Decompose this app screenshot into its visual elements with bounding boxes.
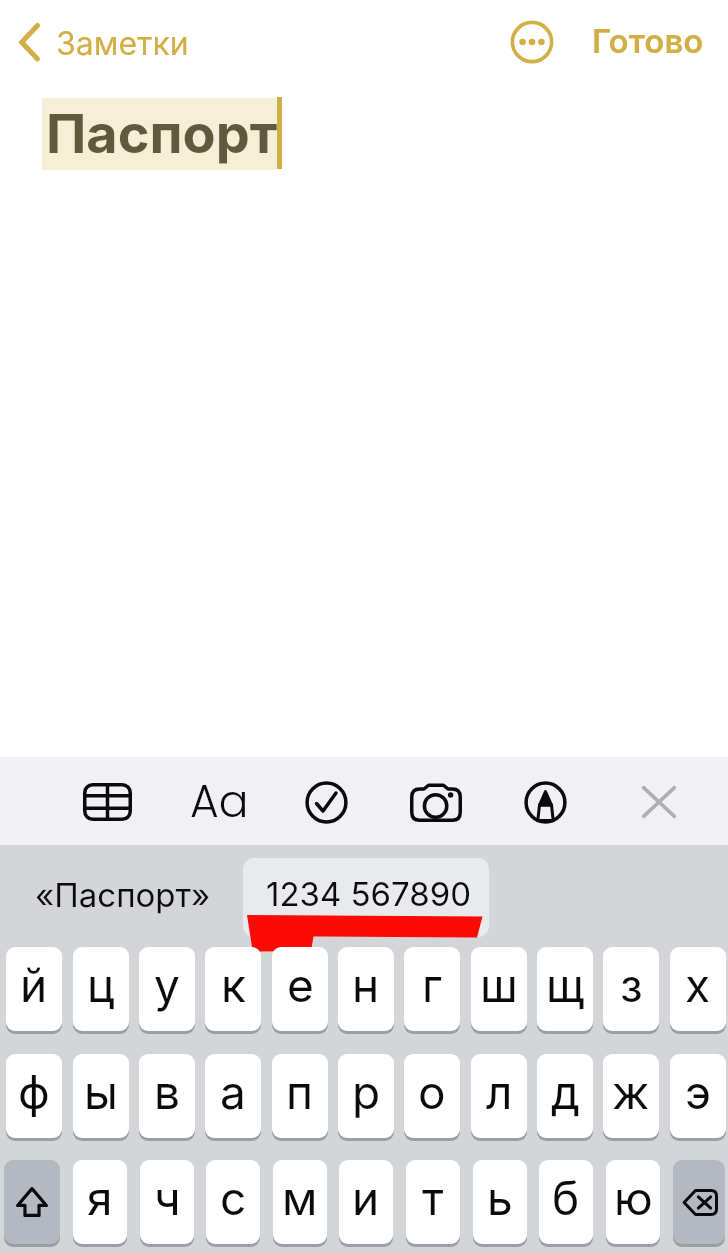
staticText: ы bbox=[84, 1064, 118, 1120]
button[interactable]: е bbox=[272, 947, 328, 1031]
staticText: л bbox=[486, 1064, 513, 1120]
staticText: ю bbox=[614, 1170, 653, 1226]
button[interactable]: м bbox=[273, 1160, 327, 1244]
staticText: т bbox=[422, 1170, 444, 1226]
staticText: «Паспорт» bbox=[35, 875, 211, 915]
staticText: п bbox=[286, 1064, 314, 1120]
button[interactable]: ь bbox=[473, 1160, 527, 1244]
button[interactable]: б bbox=[539, 1160, 593, 1244]
button[interactable]: з bbox=[603, 947, 659, 1031]
button[interactable]: к bbox=[205, 947, 261, 1031]
staticText: ц bbox=[87, 957, 115, 1013]
button[interactable]: щ bbox=[537, 947, 593, 1031]
staticText: а bbox=[220, 1064, 246, 1120]
staticText: 1234 567890 bbox=[266, 874, 471, 914]
button[interactable]: Markup bbox=[499, 757, 591, 845]
button[interactable]: й bbox=[6, 947, 62, 1031]
button[interactable]: я bbox=[73, 1160, 127, 1244]
staticText: й bbox=[20, 957, 48, 1013]
staticText: щ bbox=[546, 957, 585, 1013]
staticText: м bbox=[282, 1170, 318, 1226]
staticText: е bbox=[287, 957, 314, 1013]
button[interactable]: с bbox=[206, 1160, 260, 1244]
staticText: ш bbox=[480, 957, 518, 1013]
button[interactable]: Camera bbox=[390, 757, 482, 845]
button[interactable]: в bbox=[139, 1054, 195, 1138]
button[interactable]: Готово bbox=[584, 6, 712, 76]
staticText: Заметки bbox=[56, 24, 189, 63]
button[interactable]: More options bbox=[504, 14, 560, 70]
button[interactable]: ч bbox=[140, 1160, 194, 1244]
button[interactable]: г bbox=[404, 947, 460, 1031]
staticText: р bbox=[352, 1064, 381, 1120]
staticText: я bbox=[87, 1170, 113, 1226]
button[interactable]: д bbox=[537, 1054, 593, 1138]
staticText: и bbox=[352, 1170, 380, 1226]
staticText: ь bbox=[487, 1170, 513, 1226]
button[interactable]: Checklist bbox=[280, 757, 372, 845]
button[interactable]: Text format bbox=[173, 757, 265, 845]
button[interactable]: ю bbox=[606, 1160, 660, 1244]
staticText: в bbox=[154, 1064, 180, 1120]
button[interactable]: Заметки bbox=[4, 8, 204, 76]
button[interactable]: 1234 567890 bbox=[243, 858, 489, 937]
button[interactable]: р bbox=[338, 1054, 394, 1138]
button[interactable]: Hide keyboard bbox=[613, 757, 705, 845]
staticText: у bbox=[154, 957, 180, 1013]
button[interactable]: т bbox=[406, 1160, 460, 1244]
button[interactable]: о bbox=[404, 1054, 460, 1138]
staticText: ч bbox=[154, 1170, 181, 1226]
staticText: о bbox=[418, 1064, 446, 1120]
staticText: х bbox=[685, 957, 711, 1013]
staticText: э bbox=[685, 1064, 712, 1120]
button[interactable]: х bbox=[670, 947, 726, 1031]
button[interactable]: л bbox=[471, 1054, 527, 1138]
staticText: б bbox=[552, 1170, 580, 1226]
button[interactable]: «Паспорт» bbox=[26, 866, 219, 924]
button[interactable]: Table bbox=[61, 757, 153, 845]
button[interactable]: а bbox=[205, 1054, 261, 1138]
staticText: Паспорт bbox=[46, 101, 278, 166]
button[interactable]: н bbox=[338, 947, 394, 1031]
button[interactable]: ж bbox=[603, 1054, 659, 1138]
staticText: к bbox=[221, 957, 246, 1013]
staticText: ж bbox=[612, 1064, 650, 1120]
button[interactable]: ш bbox=[471, 947, 527, 1031]
staticText: Aa bbox=[190, 771, 249, 833]
staticText: с bbox=[220, 1170, 247, 1226]
button[interactable]: ц bbox=[73, 947, 129, 1031]
button[interactable]: Shift bbox=[4, 1160, 60, 1244]
staticText: з bbox=[620, 957, 643, 1013]
button[interactable]: э bbox=[670, 1054, 726, 1138]
staticText: ф bbox=[18, 1064, 50, 1120]
staticText: н bbox=[352, 957, 380, 1013]
button[interactable]: ы bbox=[73, 1054, 129, 1138]
button[interactable]: Backspace bbox=[673, 1160, 725, 1244]
staticText: Готово bbox=[592, 21, 704, 61]
button[interactable]: п bbox=[272, 1054, 328, 1138]
staticText: д bbox=[551, 1064, 580, 1120]
staticText: г bbox=[422, 957, 443, 1013]
button[interactable]: ф bbox=[6, 1054, 62, 1138]
button[interactable]: у bbox=[139, 947, 195, 1031]
button[interactable]: и bbox=[339, 1160, 393, 1244]
